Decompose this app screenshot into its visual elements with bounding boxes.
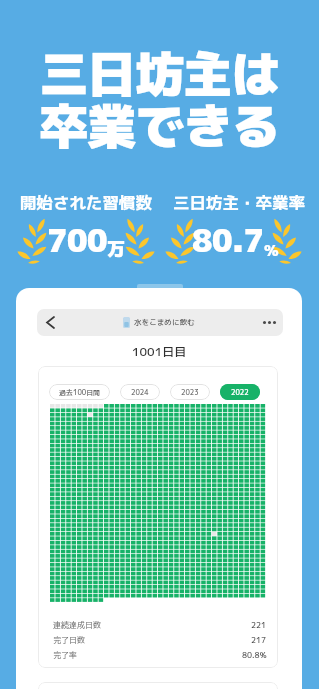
button[interactable]: 過去100日間: [49, 384, 110, 400]
staticText: 2023: [181, 387, 199, 397]
staticText: 連続達成日数: [53, 619, 101, 630]
staticText: 2024: [131, 387, 149, 397]
staticText: 卒業できる: [39, 91, 280, 159]
staticText: 2022: [231, 387, 249, 397]
staticText: 1001日目: [132, 343, 187, 360]
staticText: 80.8%: [242, 649, 267, 660]
staticText: 万: [107, 236, 125, 261]
staticText: 三日坊主・卒業率: [173, 191, 305, 214]
button[interactable]: 2024: [120, 384, 160, 400]
staticText: 完了率: [53, 649, 77, 660]
staticText: 完了日数: [53, 634, 85, 645]
other: Back: [37, 309, 63, 336]
other: More options: [255, 309, 283, 336]
staticText: 水をこまめに飲む: [134, 317, 195, 328]
staticText: 80.7: [192, 219, 264, 262]
button[interactable]: Back: [37, 309, 283, 336]
staticText: 三日坊主は: [39, 39, 280, 107]
staticText: %: [264, 240, 276, 261]
button[interactable]: 2022: [220, 384, 260, 400]
staticText: 221: [251, 619, 267, 630]
staticText: 700: [47, 219, 107, 262]
staticText: 過去100日間: [59, 387, 101, 397]
staticText: 217: [251, 634, 267, 645]
staticText: 開始された習慣数: [20, 191, 152, 214]
button[interactable]: 2023: [170, 384, 210, 400]
